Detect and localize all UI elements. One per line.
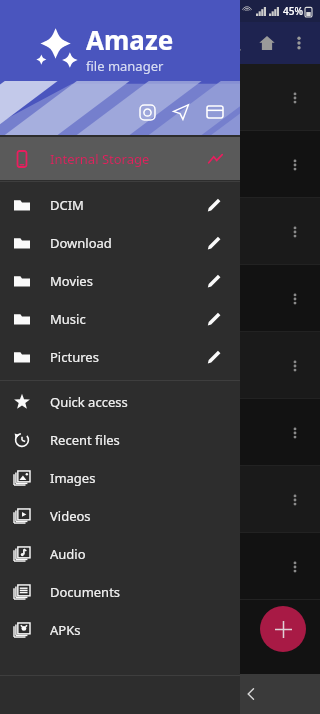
button[interactable]: Instagram	[134, 99, 160, 125]
button[interactable]: Donate	[202, 99, 228, 125]
button[interactable]: Item menu	[282, 420, 308, 446]
button[interactable]: Item menu	[0, 399, 320, 466]
button[interactable]: Documents	[0, 573, 240, 611]
button[interactable]: Internal Storage	[0, 137, 240, 180]
staticText: Internal Storage	[50, 150, 150, 168]
staticText: Download	[50, 234, 112, 252]
button[interactable]: Edit Download	[202, 231, 226, 255]
staticText: Music	[50, 310, 86, 328]
button[interactable]: Images	[0, 459, 240, 497]
button[interactable]: Item menu	[282, 487, 308, 513]
button[interactable]: Quick access	[0, 383, 240, 421]
button[interactable]: Storage usage	[204, 148, 226, 170]
button[interactable]: Edit Movies	[202, 269, 226, 293]
button[interactable]: Item menu	[0, 265, 320, 332]
button[interactable]: Edit Pictures	[202, 345, 226, 369]
button[interactable]: Audio	[0, 535, 240, 573]
button[interactable]: More options	[284, 28, 314, 58]
staticText: APKs	[50, 621, 81, 639]
staticText: 45%	[283, 4, 303, 18]
staticText: Documents	[50, 583, 121, 601]
staticText: Recent files	[50, 431, 120, 449]
staticText: Movies	[50, 272, 93, 290]
staticText: Audio	[50, 545, 86, 563]
button[interactable]: Item menu	[282, 286, 308, 312]
staticText: Pictures	[50, 348, 99, 366]
button[interactable]: Item menu	[0, 131, 320, 198]
button[interactable]: Item menu	[0, 198, 320, 265]
button[interactable]: Pictures	[0, 338, 240, 376]
staticText: file manager	[86, 57, 164, 75]
button[interactable]: DCIM	[0, 186, 240, 224]
button[interactable]: Item menu	[0, 533, 320, 600]
button[interactable]: Item menu	[282, 219, 308, 245]
button[interactable]: Item menu	[282, 554, 308, 580]
button[interactable]: Telegram	[168, 99, 194, 125]
button[interactable]: Edit DCIM	[202, 193, 226, 217]
button[interactable]: Item menu	[0, 64, 320, 131]
button[interactable]: Back	[229, 674, 273, 714]
button[interactable]: Edit Music	[202, 307, 226, 331]
button[interactable]: Item menu	[0, 332, 320, 399]
staticText: DCIM	[50, 196, 84, 214]
button[interactable]: APKs	[0, 611, 240, 649]
button[interactable]: Item menu	[282, 353, 308, 379]
button[interactable]: Movies	[0, 262, 240, 300]
staticText: Amaze	[86, 22, 174, 57]
button[interactable]: Item menu	[0, 466, 320, 533]
button[interactable]: Home	[250, 26, 284, 60]
button[interactable]: Item menu	[282, 85, 308, 111]
button[interactable]: Search	[216, 26, 250, 60]
staticText: Videos	[50, 507, 91, 525]
staticText: Quick access	[50, 393, 128, 411]
button[interactable]: Download	[0, 224, 240, 262]
staticText: Images	[50, 469, 96, 487]
button[interactable]: Music	[0, 300, 240, 338]
button[interactable]: Add	[260, 606, 306, 652]
button[interactable]: Videos	[0, 497, 240, 535]
button[interactable]: Item menu	[282, 152, 308, 178]
button[interactable]: Recent files	[0, 421, 240, 459]
